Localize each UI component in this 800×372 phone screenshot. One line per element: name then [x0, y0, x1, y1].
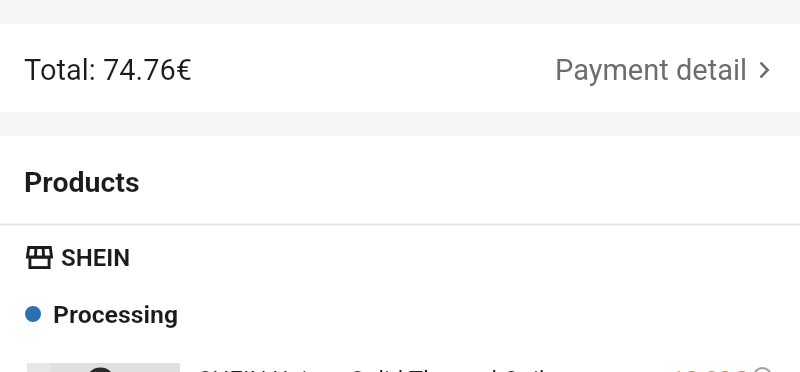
button[interactable]: Total: 74.76€ [0, 24, 800, 112]
button[interactable]: SHEIN [26, 238, 800, 276]
staticText: Payment detail [555, 53, 748, 87]
staticText: 10.99€ [671, 366, 746, 372]
staticText: Products [24, 166, 140, 199]
staticText: Processing [53, 300, 179, 329]
staticText: SHEIN Unisex Solid Thermal Quilt [198, 366, 661, 372]
button[interactable]: Select product [753, 367, 772, 372]
staticText: Total: 74.76€ [24, 53, 193, 87]
staticText: SHEIN [61, 244, 131, 272]
button[interactable]: SHEIN Unisex Solid Thermal Quilt [27, 363, 772, 372]
